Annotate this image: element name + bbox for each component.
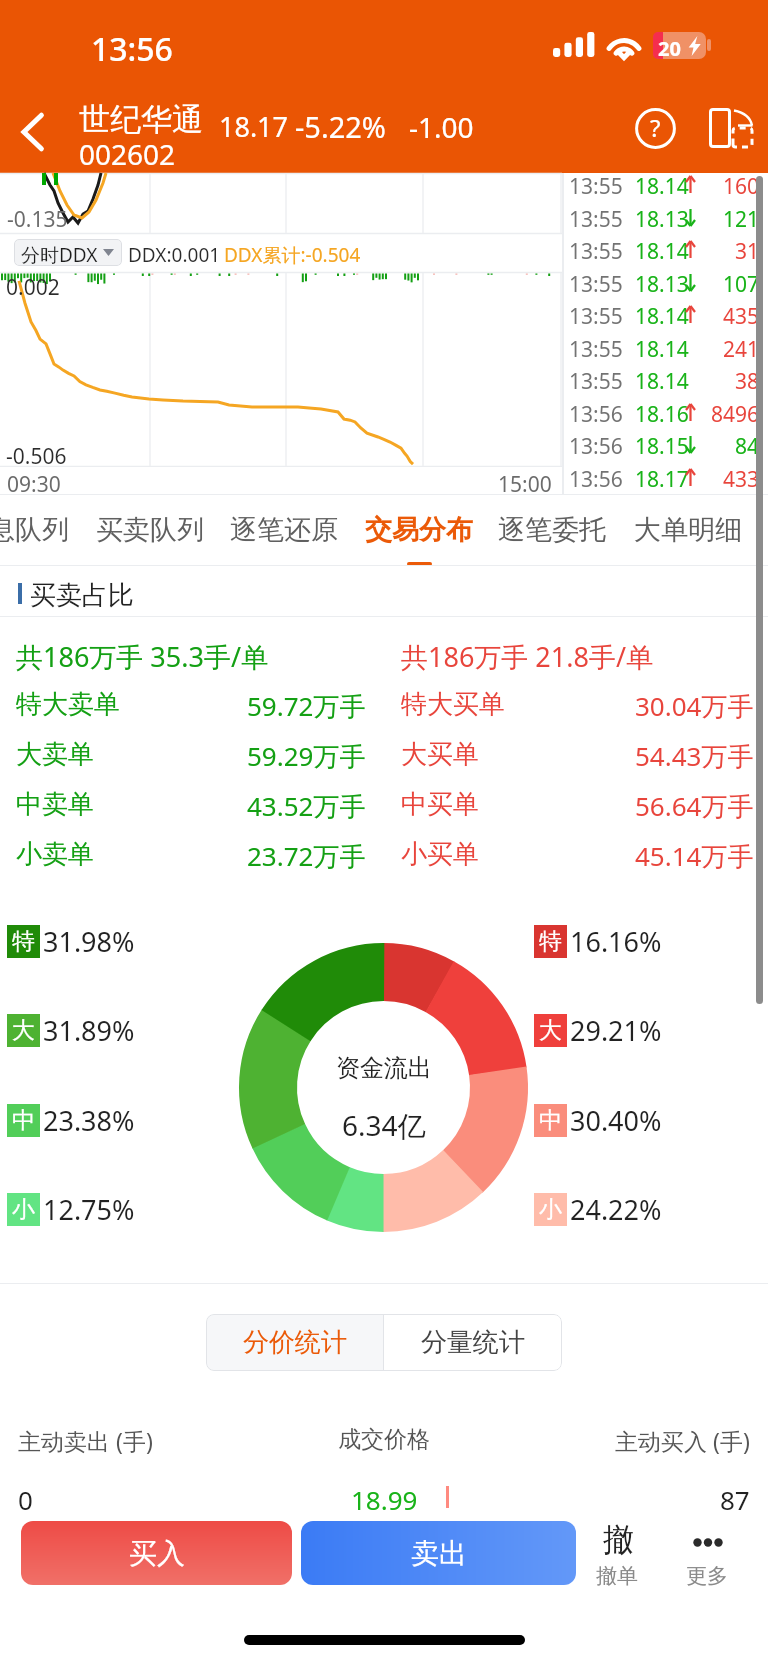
button[interactable]: 分时DDX bbox=[14, 239, 122, 266]
staticText: 0.002 bbox=[6, 273, 60, 302]
staticText: 29.21% bbox=[570, 1012, 662, 1049]
staticText: 分量统计 bbox=[421, 1326, 525, 1359]
staticText: 更多 bbox=[686, 1563, 728, 1589]
staticText: -0.506 bbox=[6, 442, 67, 471]
button[interactable]: 逐笔还原 bbox=[230, 495, 338, 565]
staticText: 18.13 bbox=[635, 270, 689, 299]
staticText: 59.29万手 bbox=[247, 738, 366, 774]
staticText: 09:30 bbox=[7, 470, 61, 497]
staticText: 18.17 bbox=[219, 108, 289, 145]
staticText: 18.13 bbox=[635, 205, 689, 234]
staticText: 世纪华通 bbox=[79, 100, 203, 139]
button[interactable]: 大单明细 bbox=[634, 495, 742, 565]
staticText: 中买单 bbox=[401, 788, 479, 821]
staticText: 38 bbox=[735, 367, 760, 396]
staticText: 大卖单 bbox=[16, 738, 94, 771]
staticText: 成交价格 bbox=[338, 1425, 430, 1454]
staticText: 买卖队列 bbox=[96, 513, 204, 547]
staticText: 30.40% bbox=[570, 1102, 662, 1139]
staticText: 主动卖出 (手) bbox=[18, 1425, 153, 1456]
staticText: 433 bbox=[723, 465, 760, 494]
staticText: 31 bbox=[735, 237, 760, 266]
button[interactable]: Split screen bbox=[701, 100, 759, 156]
staticText: 24.22% bbox=[570, 1191, 662, 1228]
staticText: 特 bbox=[12, 927, 35, 956]
staticText: 0 bbox=[18, 1482, 33, 1517]
staticText: 小 bbox=[12, 1195, 35, 1224]
staticText: 13:56 bbox=[91, 27, 173, 71]
button[interactable]: 撤 bbox=[592, 1510, 644, 1600]
button[interactable]: Back bbox=[0, 99, 66, 165]
staticText: -0.135 bbox=[7, 205, 68, 234]
staticText: 特大买单 bbox=[401, 688, 505, 721]
staticText: 18.99 bbox=[351, 1482, 418, 1517]
staticText: 56.64万手 bbox=[635, 788, 754, 824]
staticText: 中 bbox=[539, 1106, 562, 1135]
staticText: 分时DDX bbox=[21, 242, 98, 266]
staticText: 23.72万手 bbox=[247, 838, 366, 874]
staticText: 交易分布 bbox=[365, 513, 473, 547]
staticText: DDX:0.001 bbox=[128, 242, 221, 268]
staticText: 8496 bbox=[711, 400, 760, 429]
staticText: 241 bbox=[723, 335, 760, 364]
staticText: 共186万手 21.8手/单 bbox=[401, 638, 653, 675]
staticText: 主动买入 (手) bbox=[615, 1425, 750, 1456]
staticText: 30.04万手 bbox=[635, 688, 754, 724]
staticText: 18.16 bbox=[635, 400, 689, 429]
button[interactable]: 分量统计 bbox=[384, 1314, 562, 1371]
staticText: 18.14 bbox=[635, 302, 689, 331]
staticText: 大 bbox=[539, 1016, 562, 1045]
button[interactable]: 逐笔委托 bbox=[498, 495, 606, 565]
staticText: 小卖单 bbox=[16, 838, 94, 871]
staticText: 13:55 bbox=[569, 237, 623, 266]
staticText: 13:56 bbox=[569, 432, 623, 461]
staticText: 特大卖单 bbox=[16, 688, 120, 721]
staticText: 13:55 bbox=[569, 172, 623, 201]
staticText: 大 bbox=[12, 1016, 35, 1045]
staticText: 13:55 bbox=[569, 302, 623, 331]
staticText: 13:55 bbox=[569, 367, 623, 396]
staticText: 中 bbox=[12, 1106, 35, 1135]
button[interactable]: 卖出 bbox=[301, 1521, 576, 1585]
staticText: 121 bbox=[723, 205, 760, 234]
staticText: 002602 bbox=[79, 135, 176, 173]
button[interactable]: 息队列 bbox=[0, 495, 69, 565]
staticText: 特 bbox=[539, 927, 562, 956]
staticText: 59.72万手 bbox=[247, 688, 366, 724]
staticText: 23.38% bbox=[43, 1102, 135, 1139]
button[interactable]: 买卖队列 bbox=[96, 495, 204, 565]
staticText: 31.98% bbox=[43, 923, 135, 960]
staticText: 13:56 bbox=[569, 400, 623, 429]
button[interactable]: Help bbox=[627, 100, 683, 156]
staticText: 资金流出 bbox=[336, 1053, 432, 1083]
staticText: 卖出 bbox=[411, 1536, 467, 1571]
staticText: DDX累计:-0.504 bbox=[224, 242, 361, 268]
staticText: 共186万手 35.3手/单 bbox=[16, 638, 268, 675]
staticText: 6.34亿 bbox=[342, 1106, 426, 1144]
staticText: 撤单 bbox=[596, 1563, 638, 1589]
button[interactable]: 交易分布 bbox=[365, 495, 473, 565]
button[interactable]: 买入 bbox=[21, 1521, 292, 1585]
staticText: 15:00 bbox=[498, 470, 552, 497]
button[interactable]: More bbox=[682, 1510, 734, 1600]
staticText: ? bbox=[650, 111, 661, 144]
staticText: 买卖占比 bbox=[30, 579, 134, 612]
staticText: 逐笔委托 bbox=[498, 513, 606, 547]
staticText: 31.89% bbox=[43, 1012, 135, 1049]
staticText: 大买单 bbox=[401, 738, 479, 771]
staticText: 逐笔还原 bbox=[230, 513, 338, 547]
staticText: 18.15 bbox=[635, 432, 689, 461]
button[interactable]: 分价统计 bbox=[206, 1314, 383, 1371]
staticText: -5.22% bbox=[295, 107, 386, 146]
staticText: 43.52万手 bbox=[247, 788, 366, 824]
staticText: 13:55 bbox=[569, 270, 623, 299]
staticText: 12.75% bbox=[43, 1191, 135, 1228]
staticText: 435 bbox=[723, 302, 760, 331]
staticText: 小 bbox=[539, 1195, 562, 1224]
staticText: 18.14 bbox=[635, 367, 689, 396]
staticText: 18.14 bbox=[635, 172, 689, 201]
staticText: 小买单 bbox=[401, 838, 479, 871]
staticText: 54.43万手 bbox=[635, 738, 754, 774]
staticText: 160 bbox=[723, 172, 760, 201]
staticText: 买入 bbox=[129, 1536, 185, 1571]
